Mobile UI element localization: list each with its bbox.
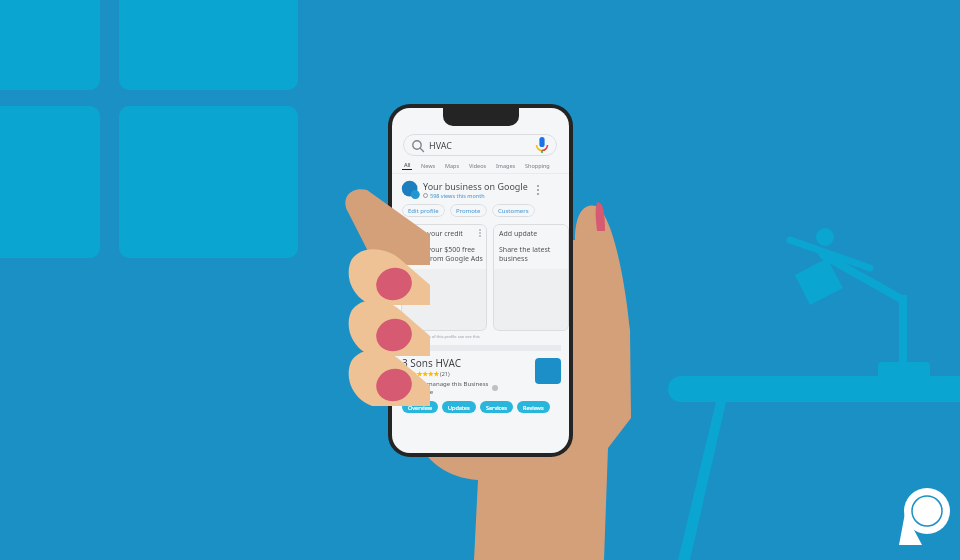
staticText: HVAC	[429, 139, 452, 151]
staticText: Shopping	[525, 162, 550, 169]
other: Chat	[0, 0, 960, 560]
button[interactable]: Services	[480, 401, 513, 413]
button[interactable]: HVAC	[403, 134, 557, 156]
staticText: 598 views this month	[430, 192, 485, 199]
button[interactable]: Shopping	[525, 162, 550, 169]
button[interactable]: News	[421, 162, 436, 169]
staticText: Promote	[456, 207, 481, 215]
button[interactable]: More options	[532, 184, 544, 196]
staticText: Reviews	[523, 404, 544, 411]
button[interactable]: All	[402, 161, 412, 170]
staticText: Customers	[498, 207, 529, 215]
button[interactable]: Overview	[402, 401, 438, 413]
button[interactable]: Add update	[493, 224, 569, 331]
button[interactable]: Maps	[445, 162, 460, 169]
button[interactable]: Claim your credit	[401, 224, 487, 331]
button[interactable]: Updates	[442, 401, 476, 413]
staticText: Updates	[448, 404, 470, 411]
staticText: Claim your credit	[407, 229, 476, 239]
button[interactable]: Business photo	[535, 358, 561, 384]
staticText: Share the latest business	[499, 245, 551, 263]
button[interactable]: Edit profile	[402, 204, 445, 217]
staticText: Videos	[469, 162, 487, 169]
staticText: 3 Sons HVAC	[402, 356, 461, 370]
staticText: 5.0	[402, 370, 410, 377]
staticText: (21)	[440, 370, 450, 377]
staticText: All	[404, 161, 411, 168]
button[interactable]: Reviews	[517, 401, 550, 413]
staticText: Only managers of this profile can see th…	[402, 334, 480, 339]
staticText: Images	[496, 162, 516, 169]
staticText: Your business on Google	[423, 180, 528, 192]
button[interactable]: Videos	[469, 162, 487, 169]
staticText: News	[421, 162, 436, 169]
staticText: Claim your $500 free credit from Google …	[407, 245, 483, 263]
staticText: Maps	[445, 162, 460, 169]
staticText: Services	[486, 404, 507, 411]
staticText: Overview	[408, 404, 432, 411]
staticText: Edit profile	[408, 207, 439, 215]
button[interactable]: Promote	[450, 204, 487, 217]
staticText: You manage this Business Profile	[415, 380, 489, 396]
staticText: Add update	[499, 229, 566, 239]
button[interactable]: Images	[496, 162, 516, 169]
button[interactable]: Customers	[492, 204, 535, 217]
